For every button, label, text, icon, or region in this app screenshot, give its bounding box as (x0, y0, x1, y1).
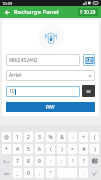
button[interactable]: 10 (6, 86, 80, 97)
button[interactable]: 9862452492 (6, 54, 80, 66)
staticText: : (50, 158, 52, 165)
staticText: , (39, 170, 41, 177)
staticText: 1 (16, 134, 19, 141)
button[interactable]: : (46, 156, 55, 166)
button[interactable]: ( (90, 132, 99, 142)
staticText: 10:09 (2, 1, 13, 6)
staticText: #+= (3, 159, 10, 164)
button[interactable]: Paste (82, 85, 95, 97)
button[interactable]: . (79, 168, 88, 178)
button[interactable]: 6 (35, 144, 44, 154)
button[interactable]: 7 (13, 156, 22, 166)
button[interactable]: 3 (35, 132, 44, 142)
staticText: % (48, 134, 53, 141)
staticText: 9862452492 (9, 57, 38, 64)
button[interactable]: ₹ 30.20 (78, 8, 98, 16)
staticText: # (82, 146, 86, 153)
button[interactable]: @ (2, 132, 11, 142)
staticText: ) (94, 146, 96, 153)
staticText: 5 (27, 146, 30, 153)
button[interactable]: , (35, 168, 44, 178)
button[interactable]: % (46, 132, 55, 142)
button[interactable]: & (57, 132, 66, 142)
staticText: ) (61, 146, 63, 153)
staticText: 10 (9, 88, 15, 95)
button[interactable]: 4 (13, 144, 22, 154)
button[interactable]: ; (57, 156, 66, 166)
button[interactable]: Pick contact (83, 54, 95, 66)
staticText: 8 (27, 158, 30, 165)
staticText: " (49, 170, 52, 177)
button[interactable]: - (68, 132, 77, 142)
staticText: ? (82, 158, 85, 165)
button[interactable]: abc (2, 168, 11, 178)
button[interactable]: Backspace (90, 156, 99, 166)
staticText: Recharge Panel (14, 8, 59, 16)
staticText: 2 (27, 134, 30, 141)
button[interactable]: 0 (24, 168, 33, 178)
button[interactable]: ) (90, 144, 99, 154)
button[interactable]: PAY (6, 102, 95, 112)
button[interactable]: 9 (35, 156, 44, 166)
staticText: ! (72, 158, 74, 165)
staticText: ( (94, 134, 96, 141)
button[interactable]: 8 (24, 156, 33, 166)
button[interactable]: 2 (24, 132, 33, 142)
staticText: _ (16, 170, 19, 177)
button[interactable]: Airtel (6, 70, 95, 81)
button[interactable]: ( (46, 144, 55, 154)
staticText: PAY (46, 104, 55, 111)
button[interactable]: Enter (90, 168, 99, 178)
button[interactable]: #+= (2, 156, 11, 166)
button[interactable]: ) (57, 144, 66, 154)
button[interactable]: ? (79, 156, 88, 166)
staticText: = (71, 146, 74, 153)
staticText: 4 (16, 146, 19, 153)
staticText: & (60, 134, 64, 141)
button[interactable]: " (46, 168, 55, 178)
button[interactable]: ! (68, 156, 77, 166)
button[interactable]: _ (13, 168, 22, 178)
staticText: @ (4, 134, 9, 141)
staticText: ( (50, 146, 52, 153)
staticText: ₹ 30.20 (80, 9, 96, 15)
staticText: 9 (38, 158, 41, 165)
staticText: 0 (27, 170, 30, 177)
button[interactable]: Back (3, 8, 12, 17)
button[interactable]: * (2, 144, 11, 154)
staticText: ; (61, 158, 63, 165)
staticText: . (83, 170, 85, 177)
staticText: 7 (16, 158, 19, 165)
staticText: + (82, 134, 85, 141)
staticText: 6 (38, 146, 41, 153)
button[interactable]: # (79, 144, 88, 154)
staticText: - (72, 134, 74, 141)
button[interactable]: 1 (13, 132, 22, 142)
staticText: * (5, 146, 8, 153)
button[interactable]: + (79, 132, 88, 142)
button[interactable]: 5 (24, 144, 33, 154)
button[interactable]: = (68, 144, 77, 154)
staticText: Airtel (9, 72, 22, 79)
staticText: abc (4, 171, 10, 176)
staticText: 3 (38, 134, 41, 141)
